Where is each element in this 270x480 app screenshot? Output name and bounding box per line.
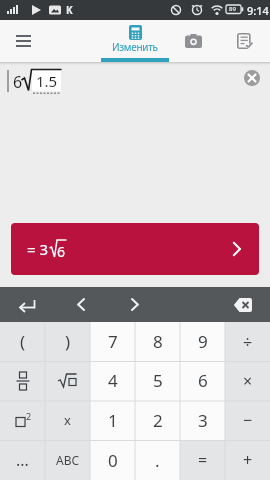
button[interactable] [45,361,90,400]
button[interactable] [176,25,210,57]
button[interactable]: 8 [135,322,180,361]
button[interactable]: Изменить [95,20,175,62]
button[interactable] [228,25,262,57]
button[interactable] [6,26,40,56]
staticText: ) [65,330,71,353]
staticText: = 3 [27,239,49,259]
staticText: 6 [198,369,208,392]
button[interactable]: 1 [90,400,135,440]
button[interactable]: × [225,361,270,400]
staticText: 2 [153,409,163,432]
button[interactable]: ABC [45,440,90,480]
button[interactable] [216,287,270,322]
staticText: − [243,409,253,431]
button[interactable]: = 3 [11,223,259,275]
button[interactable]: x [45,400,90,440]
button[interactable]: − [225,400,270,440]
staticText: 2 [26,410,32,422]
button[interactable]: ) [45,322,90,361]
button[interactable]: ... [0,440,45,480]
button[interactable]: 6 [180,361,225,400]
staticText: 1.5 [36,71,58,91]
staticText: ... [16,449,29,471]
staticText: 89 [229,5,236,13]
button[interactable]: ( [0,322,45,361]
staticText: K [66,3,73,17]
button[interactable] [108,287,162,322]
button[interactable] [244,70,260,86]
staticText: ÷ [243,331,253,353]
staticText: 1 [108,409,118,432]
staticText: 8 [153,330,163,353]
staticText: 3 [198,409,208,432]
button[interactable]: 2 [135,400,180,440]
staticText: 9:14 [247,3,269,18]
button[interactable]: 2 [0,400,45,440]
staticText: 5 [153,369,163,392]
button[interactable]: 7 [90,322,135,361]
staticText: 6 [57,242,66,261]
button[interactable]: . [135,440,180,480]
staticText: ( [20,330,26,353]
staticText: x [64,411,71,429]
button[interactable]: = [180,440,225,480]
staticText: 4 [108,369,118,392]
staticText: 0 [108,449,118,472]
button[interactable]: 9 [180,322,225,361]
staticText: × [243,370,253,392]
staticText: 7 [108,330,118,353]
button[interactable]: 0 [90,440,135,480]
staticText: Изменить [112,40,158,54]
button[interactable] [54,287,108,322]
staticText: 6 [13,71,23,93]
button[interactable]: 5 [135,361,180,400]
button[interactable] [0,287,54,322]
button[interactable]: + [225,440,270,480]
staticText: + [243,449,253,471]
button[interactable] [0,361,45,400]
button[interactable]: 3 [180,400,225,440]
button[interactable]: ÷ [225,322,270,361]
staticText: 9 [198,330,208,353]
staticText: . [155,449,160,472]
button[interactable]: 4 [90,361,135,400]
staticText: = [198,449,208,471]
staticText: ABC [56,452,80,468]
